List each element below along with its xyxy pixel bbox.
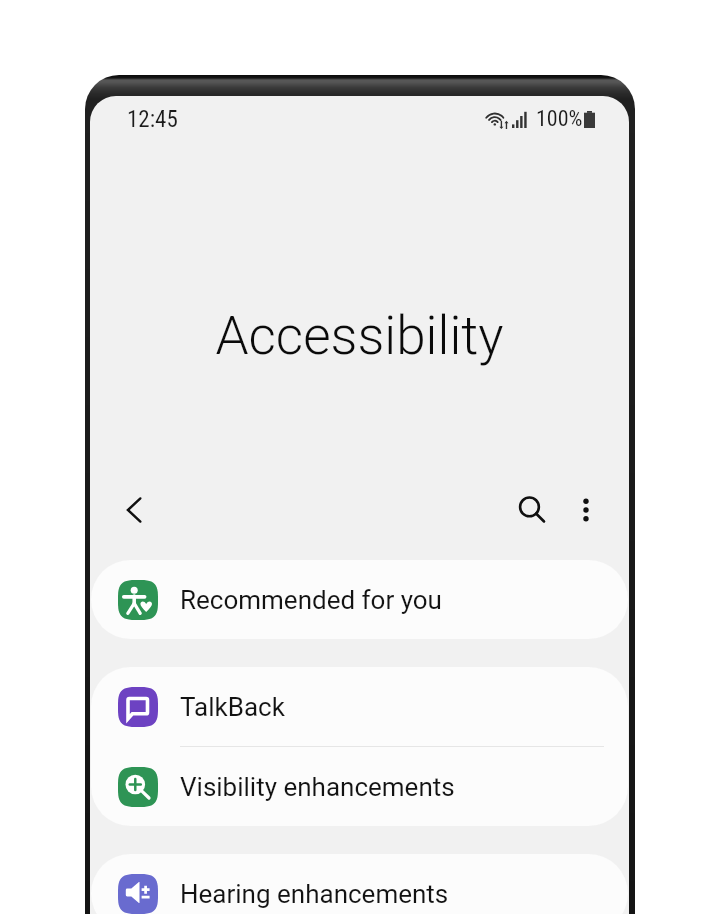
staticText: Visibility enhancements: [180, 772, 455, 802]
button[interactable]: Navigate up: [107, 483, 160, 536]
staticText: Accessibility: [90, 305, 629, 367]
staticText: 12:45: [127, 106, 178, 133]
button[interactable]: Visibility enhancements: [91, 747, 628, 826]
staticText: Recommended for you: [180, 585, 442, 615]
button[interactable]: Search: [505, 483, 558, 536]
staticText: Hearing enhancements: [180, 879, 449, 909]
button[interactable]: More options: [559, 483, 612, 536]
button[interactable]: TalkBack: [91, 667, 628, 746]
staticText: 100%: [536, 106, 583, 132]
button[interactable]: Recommended for you: [91, 560, 628, 639]
button[interactable]: Hearing enhancements: [91, 854, 628, 914]
staticText: TalkBack: [180, 692, 285, 722]
